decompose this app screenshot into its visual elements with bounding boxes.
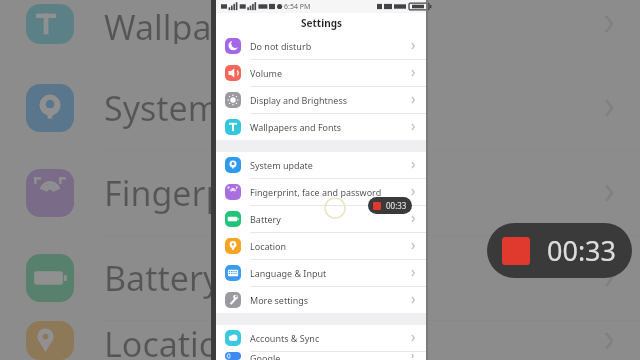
button[interactable]: Fingerpri: [0, 151, 640, 235]
staticText: 00:33: [386, 200, 407, 211]
button[interactable]: Display and Brightness: [216, 87, 426, 113]
button[interactable]: Stop recording: [487, 223, 632, 278]
button[interactable]: Battery: [0, 236, 640, 320]
staticText: Language & Input: [250, 267, 327, 279]
button[interactable]: System update: [216, 152, 426, 178]
staticText: Wallpapers: [104, 4, 282, 44]
staticText: Google: [250, 352, 281, 360]
button[interactable]: Location: [0, 321, 640, 360]
staticText: Location: [250, 240, 287, 252]
staticText: Wallpapers and Fonts: [250, 121, 342, 133]
staticText: Fingerprint, face and password: [250, 186, 382, 198]
button[interactable]: Accounts & Sync: [216, 325, 426, 351]
staticText: Volume: [250, 67, 283, 79]
staticText: Fingerpri: [104, 170, 250, 216]
staticText: Battery: [104, 255, 221, 301]
staticText: More settings: [250, 294, 309, 306]
staticText: 6:54 PM: [284, 2, 311, 12]
button[interactable]: Language & Input: [216, 260, 426, 286]
staticText: Location: [104, 321, 241, 360]
staticText: System u: [104, 85, 250, 131]
staticText: Do not disturb: [250, 40, 312, 52]
staticText: System update: [250, 159, 313, 171]
staticText: Settings: [301, 16, 342, 30]
button[interactable]: Google: [216, 352, 426, 360]
button[interactable]: Do not disturb: [216, 33, 426, 59]
button[interactable]: Fingerprint, face and password: [216, 179, 426, 205]
staticText: Accounts & Sync: [250, 332, 320, 344]
button[interactable]: Stop recording: [368, 197, 412, 214]
button[interactable]: System u: [0, 66, 640, 150]
staticText: Display and Brightness: [250, 94, 348, 106]
staticText: 00:33: [547, 232, 617, 269]
button[interactable]: More settings: [216, 287, 426, 313]
button[interactable]: Volume: [216, 60, 426, 86]
button[interactable]: Wallpapers: [0, 4, 640, 44]
button[interactable]: Location: [216, 233, 426, 259]
staticText: Battery: [250, 213, 281, 225]
button[interactable]: Battery: [216, 206, 426, 232]
button[interactable]: Wallpapers and Fonts: [216, 114, 426, 140]
